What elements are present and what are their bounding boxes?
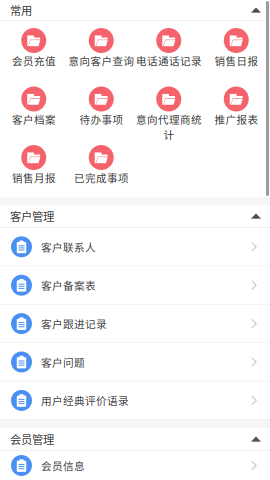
- button[interactable]: 客户档案: [0, 79, 67, 138]
- button[interactable]: 待办事项: [67, 79, 135, 138]
- staticText: 客户问题: [41, 354, 85, 370]
- staticText: 意向客户查询: [68, 53, 134, 68]
- button[interactable]: 会员充值: [0, 21, 67, 79]
- button[interactable]: 客户管理: [0, 205, 270, 228]
- button[interactable]: 客户跟进记录: [0, 305, 270, 343]
- button[interactable]: 客户联系人: [0, 228, 270, 266]
- button[interactable]: 会员管理: [0, 428, 270, 451]
- button[interactable]: 意向客户查询: [67, 21, 135, 79]
- button[interactable]: 电话通话记录: [135, 21, 202, 79]
- button[interactable]: 推广报表: [202, 79, 270, 138]
- button[interactable]: 客户问题: [0, 343, 270, 382]
- staticText: 客户备案表: [41, 277, 96, 293]
- staticText: 客户管理: [10, 208, 54, 224]
- staticText: 推广报表: [214, 111, 258, 127]
- staticText: 意向代理商统计: [136, 111, 202, 142]
- staticText: 用户经典评价语录: [41, 393, 129, 408]
- button[interactable]: 销售月报: [0, 138, 67, 196]
- button[interactable]: 已完成事项: [67, 138, 135, 196]
- button[interactable]: 客户备案表: [0, 266, 270, 305]
- staticText: 已完成事项: [74, 170, 129, 185]
- staticText: 会员充值: [12, 53, 56, 68]
- button[interactable]: 销售日报: [202, 21, 270, 79]
- staticText: 会员信息: [41, 458, 85, 473]
- button[interactable]: 意向代理商统计: [135, 79, 202, 138]
- staticText: 会员管理: [10, 431, 54, 447]
- staticText: 客户跟进记录: [41, 316, 107, 331]
- staticText: 客户联系人: [41, 239, 96, 254]
- staticText: 待办事项: [79, 111, 123, 127]
- staticText: 常用: [10, 2, 32, 18]
- button[interactable]: 常用: [0, 0, 270, 21]
- staticText: 销售月报: [12, 170, 56, 185]
- button[interactable]: 用户经典评价语录: [0, 382, 270, 420]
- button[interactable]: 会员信息: [0, 451, 270, 480]
- staticText: 电话通话记录: [136, 53, 202, 68]
- staticText: 销售日报: [214, 53, 258, 68]
- staticText: 客户档案: [12, 111, 56, 127]
